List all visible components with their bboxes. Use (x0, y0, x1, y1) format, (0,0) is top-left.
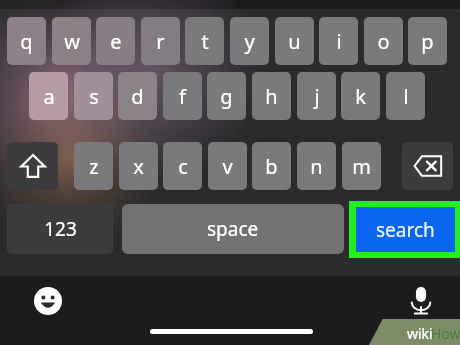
button[interactable]: h (252, 72, 291, 120)
staticText: i (336, 28, 342, 55)
button[interactable]: 123 (7, 204, 113, 254)
staticText: s (89, 83, 99, 110)
staticText: o (377, 28, 390, 55)
staticText: p (421, 28, 434, 55)
staticText: c (178, 153, 188, 180)
staticText: r (156, 28, 165, 55)
button[interactable]: k (341, 72, 380, 120)
staticText: a (43, 83, 55, 110)
button[interactable]: z (74, 142, 113, 190)
button[interactable]: c (163, 142, 202, 190)
staticText: t (201, 28, 209, 55)
staticText: e (110, 28, 122, 55)
staticText: h (265, 83, 278, 110)
staticText: n (310, 153, 323, 180)
button[interactable]: i (319, 17, 358, 65)
staticText: y (244, 28, 255, 55)
button[interactable]: w (52, 17, 91, 65)
button[interactable]: search (356, 207, 455, 252)
staticText: q (20, 28, 33, 55)
button[interactable]: Delete (402, 142, 453, 190)
staticText: b (265, 153, 278, 180)
button[interactable]: e (96, 17, 135, 65)
button[interactable]: a (29, 72, 68, 120)
button[interactable]: y (230, 17, 269, 65)
button[interactable]: g (207, 72, 246, 120)
button[interactable]: Emoji keyboard (31, 284, 65, 318)
staticText: 123 (44, 216, 77, 242)
staticText: space (207, 216, 259, 242)
button[interactable]: l (386, 72, 425, 120)
button[interactable]: o (364, 17, 403, 65)
staticText: x (133, 153, 144, 180)
button[interactable]: space (122, 204, 344, 254)
button[interactable]: x (119, 142, 158, 190)
button[interactable]: s (74, 72, 113, 120)
staticText: z (89, 153, 99, 180)
button[interactable]: j (297, 72, 336, 120)
button[interactable]: Shift (7, 142, 58, 190)
button[interactable]: v (208, 142, 247, 190)
staticText: j (314, 83, 320, 110)
staticText: f (179, 83, 186, 110)
button[interactable]: p (408, 17, 447, 65)
button[interactable]: r (141, 17, 180, 65)
staticText: u (288, 28, 301, 55)
staticText: w (64, 28, 80, 55)
button[interactable]: d (118, 72, 157, 120)
staticText: How (431, 324, 460, 343)
button[interactable]: b (252, 142, 291, 190)
button[interactable]: n (297, 142, 336, 190)
button[interactable]: q (7, 17, 46, 65)
button[interactable]: m (342, 142, 381, 190)
staticText: v (222, 153, 233, 180)
staticText: d (131, 83, 144, 110)
button[interactable]: f (163, 72, 202, 120)
button[interactable]: Dictation (404, 284, 438, 318)
staticText: search (376, 217, 435, 243)
staticText: m (352, 153, 371, 180)
staticText: g (220, 83, 233, 110)
staticText: l (403, 83, 409, 110)
button[interactable]: t (185, 17, 224, 65)
staticText: wiki (407, 324, 433, 343)
button[interactable]: u (275, 17, 314, 65)
staticText: k (355, 83, 366, 110)
